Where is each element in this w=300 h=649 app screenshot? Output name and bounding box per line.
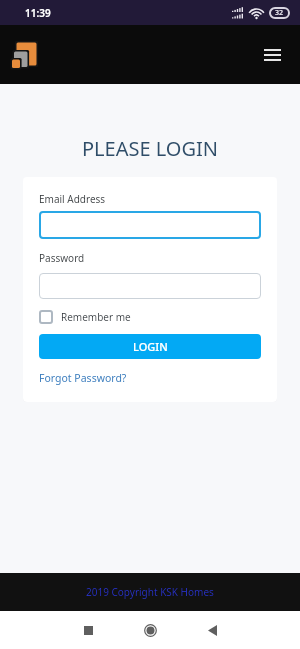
staticText: 32: [275, 8, 284, 18]
staticText: 2019 Copyright KSK Homes: [86, 585, 214, 599]
button[interactable]: [39, 273, 261, 299]
button[interactable]: Remember me: [39, 310, 131, 324]
staticText: Password: [39, 251, 85, 265]
staticText: 11:39: [25, 6, 51, 20]
staticText: Email Address: [39, 192, 106, 206]
button[interactable]: Forgot Password?: [39, 371, 127, 385]
button[interactable]: [39, 211, 261, 239]
staticText: PLEASE LOGIN: [0, 135, 300, 162]
button[interactable]: [131, 611, 169, 649]
button[interactable]: [193, 611, 231, 649]
button[interactable]: LOGIN: [39, 334, 261, 359]
staticText: LOGIN: [133, 339, 168, 354]
button[interactable]: [69, 611, 107, 649]
button[interactable]: [259, 42, 285, 68]
staticText: Remember me: [61, 310, 131, 324]
